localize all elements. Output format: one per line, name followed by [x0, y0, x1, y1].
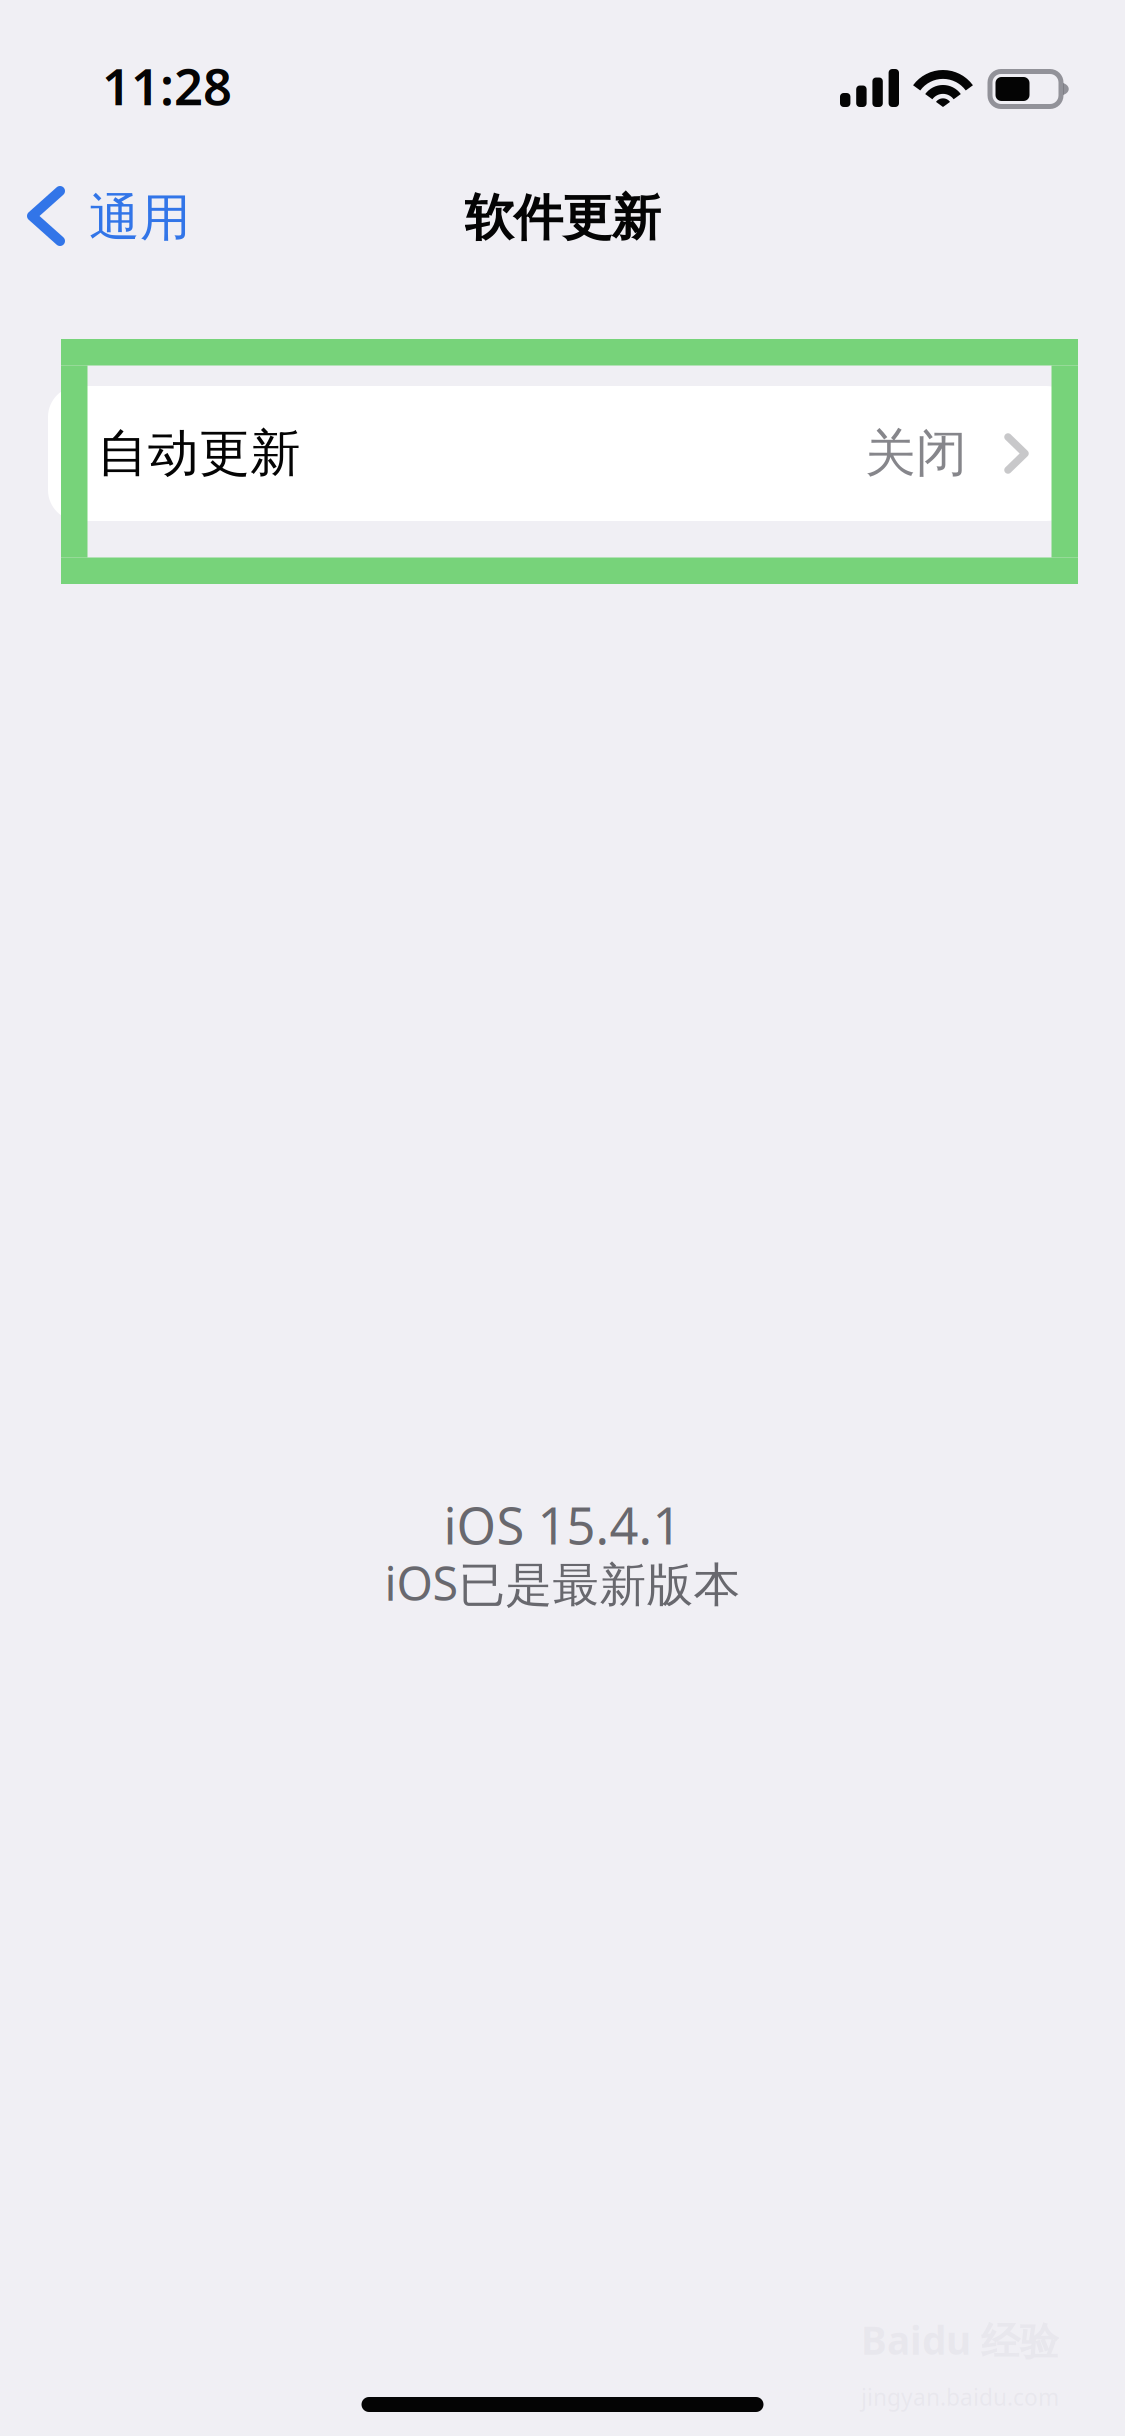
staticText: 关闭 [865, 422, 967, 485]
staticText: 软件更新 [464, 188, 660, 248]
staticText: 自动更新 [97, 422, 301, 485]
staticText: Baidu 经验 [861, 2314, 1059, 2365]
button[interactable]: 通用 [0, 163, 217, 273]
button[interactable]: 自动更新 [48, 386, 1077, 521]
staticText: iOS已是最新版本 [384, 1551, 740, 1614]
staticText: 11:28 [102, 52, 232, 119]
staticText: 通用 [89, 187, 191, 249]
staticText: iOS 15.4.1 [443, 1491, 681, 1559]
